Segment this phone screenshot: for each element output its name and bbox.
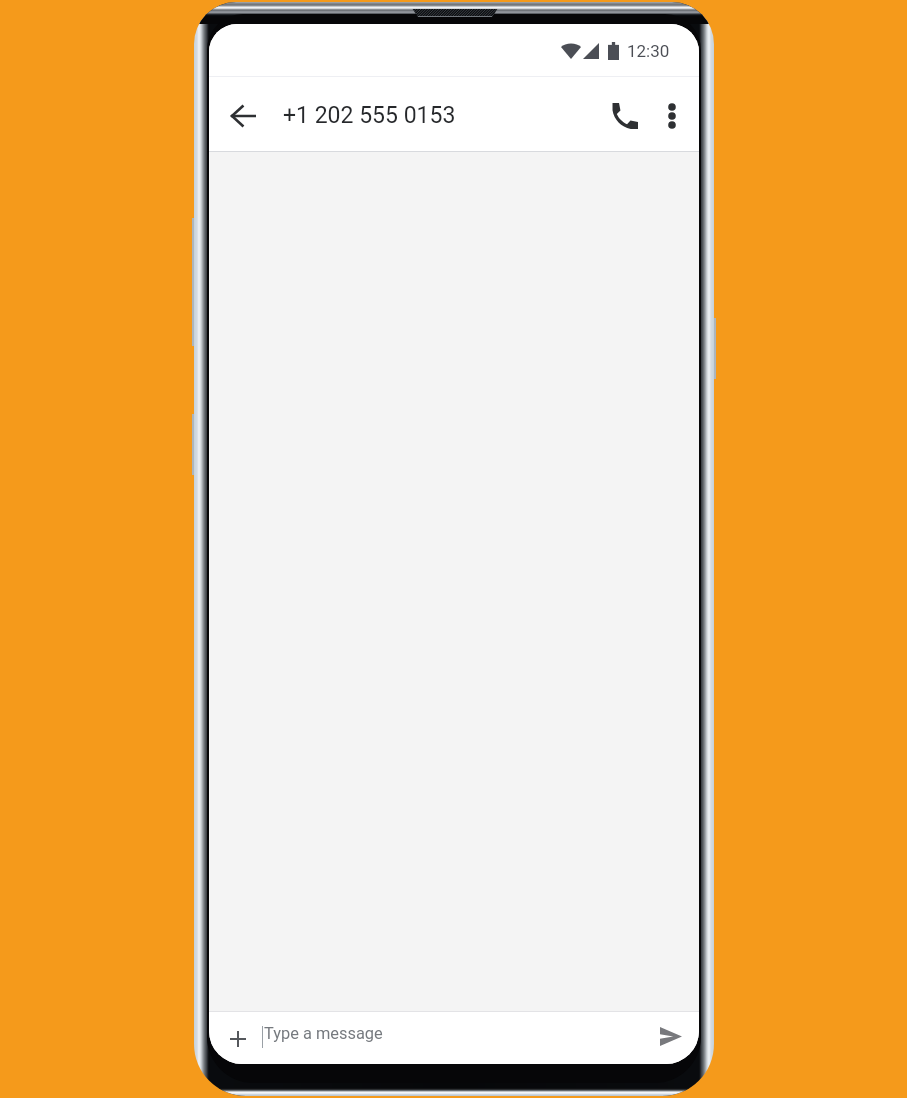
staticText: +1 202 555 0153	[283, 102, 456, 129]
staticText: 12:30	[627, 41, 670, 61]
staticText: Type a message	[264, 1024, 383, 1043]
button[interactable]: More options	[648, 92, 696, 140]
button[interactable]: Send	[647, 1012, 695, 1060]
button[interactable]: Call	[601, 92, 649, 140]
button[interactable]: Add attachment	[214, 1015, 262, 1063]
button[interactable]: Back	[219, 92, 267, 140]
